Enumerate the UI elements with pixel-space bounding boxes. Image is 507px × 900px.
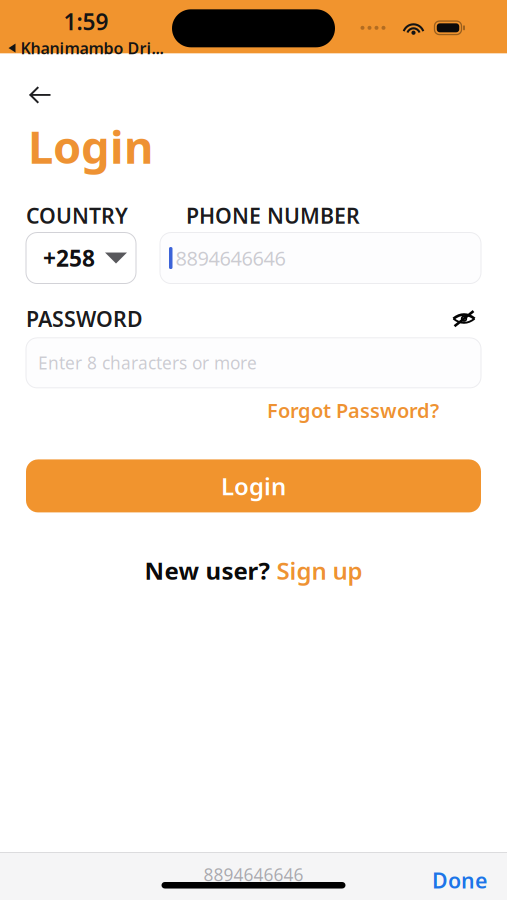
staticText: PASSWORD bbox=[26, 304, 143, 333]
button[interactable]: Phone number bbox=[160, 232, 481, 283]
button[interactable]: 8894646646 bbox=[183, 858, 323, 891]
button[interactable]: Sign up bbox=[276, 554, 362, 586]
staticText: Khanimambo Dri... bbox=[20, 37, 163, 59]
button[interactable]: Password bbox=[26, 338, 481, 388]
staticText: 8894646646 bbox=[203, 863, 303, 886]
button[interactable]: Back bbox=[18, 78, 62, 112]
button[interactable]: Done bbox=[412, 861, 507, 899]
staticText: Enter 8 characters or more bbox=[38, 351, 257, 374]
button[interactable]: Country code +258 bbox=[26, 232, 136, 283]
staticText: +258 bbox=[43, 243, 95, 273]
staticText: Done bbox=[432, 866, 487, 894]
button[interactable]: Login bbox=[26, 459, 481, 512]
button[interactable]: Forgot Password? bbox=[267, 397, 439, 423]
staticText: Login bbox=[221, 470, 286, 502]
staticText: New user? bbox=[144, 554, 269, 586]
button[interactable]: Show password bbox=[447, 307, 481, 331]
staticText: PHONE NUMBER bbox=[186, 201, 360, 229]
staticText: COUNTRY bbox=[26, 201, 128, 229]
staticText: Forgot Password? bbox=[267, 397, 439, 423]
staticText: 1:59 bbox=[63, 6, 108, 36]
staticText: Sign up bbox=[276, 554, 362, 586]
staticText: Login bbox=[28, 116, 153, 176]
staticText: 8894646646 bbox=[175, 245, 285, 271]
